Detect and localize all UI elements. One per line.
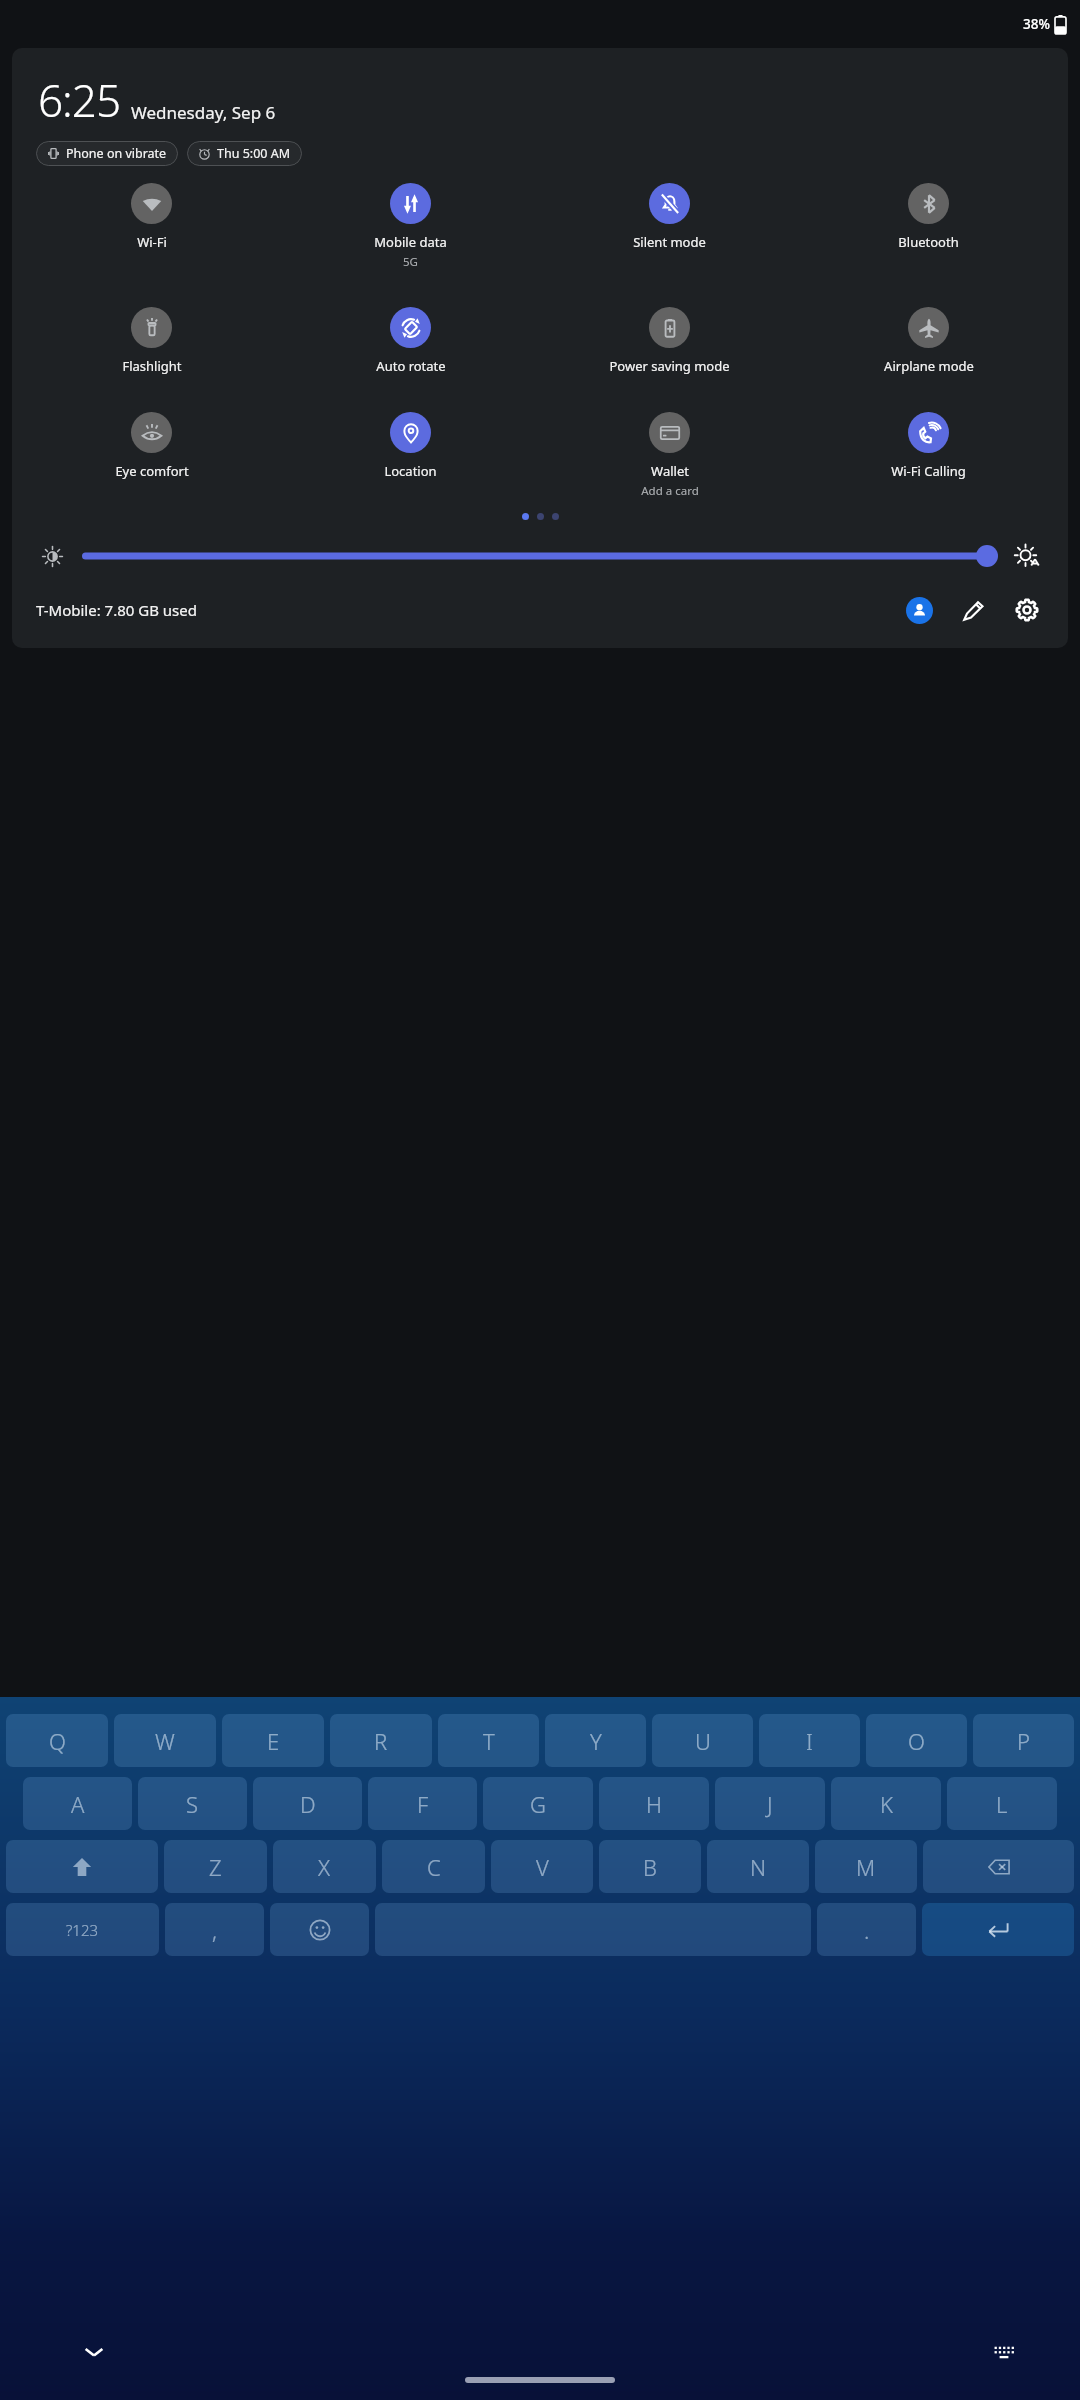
button[interactable]: X — [273, 1840, 376, 1893]
staticText: H — [646, 1789, 662, 1819]
staticText: 5G — [403, 254, 418, 270]
button[interactable]: V — [491, 1840, 593, 1893]
button[interactable]: Auto brightness — [1010, 539, 1044, 573]
staticText: P — [1017, 1726, 1030, 1756]
staticText: Z — [209, 1852, 222, 1882]
button[interactable]: B — [599, 1840, 701, 1893]
staticText: T — [483, 1726, 495, 1756]
button[interactable]: M — [815, 1840, 917, 1893]
button[interactable]: S — [138, 1777, 247, 1830]
button[interactable]: J — [715, 1777, 825, 1830]
button[interactable]: Wi-Fi — [22, 179, 281, 255]
button[interactable]: U — [652, 1714, 753, 1767]
button[interactable]: A — [23, 1777, 132, 1830]
staticText: Power saving mode — [609, 357, 730, 375]
button[interactable]: Power saving mode — [540, 303, 799, 379]
button[interactable]: Settings — [1008, 591, 1046, 629]
staticText: Wednesday, Sep 6 — [131, 101, 276, 124]
staticText: W — [155, 1726, 175, 1756]
staticText: Eye comfort — [115, 462, 189, 480]
staticText: Y — [590, 1726, 602, 1756]
button[interactable]: E — [222, 1714, 324, 1767]
button[interactable]: W — [114, 1714, 216, 1767]
button[interactable]: Brightness — [36, 540, 68, 572]
button[interactable]: Brightness slider — [82, 541, 998, 571]
button[interactable]: Bluetooth — [799, 179, 1058, 255]
button[interactable]: P — [973, 1714, 1074, 1767]
staticText: B — [643, 1852, 657, 1882]
staticText: V — [536, 1852, 549, 1882]
staticText: K — [880, 1789, 893, 1819]
staticText: Wi-Fi Calling — [891, 462, 966, 480]
button[interactable]: T — [438, 1714, 539, 1767]
button[interactable]: Q — [6, 1714, 108, 1767]
staticText: F — [417, 1789, 429, 1819]
button[interactable]: Switch keyboard — [984, 2332, 1024, 2372]
button[interactable]: Hide keyboard — [74, 2332, 114, 2372]
button[interactable]: . — [817, 1903, 916, 1956]
button[interactable]: Backspace — [923, 1840, 1074, 1893]
staticText: J — [767, 1789, 773, 1819]
button[interactable]: Thu 5:00 AM — [187, 141, 302, 166]
button[interactable]: K — [831, 1777, 941, 1830]
staticText: Wi-Fi — [137, 233, 167, 251]
staticText: Add a card — [641, 483, 699, 499]
staticText: Auto rotate — [376, 357, 446, 375]
staticText: G — [530, 1789, 546, 1819]
staticText: I — [806, 1726, 813, 1756]
button[interactable]: ?123 — [6, 1903, 159, 1956]
button[interactable]: R — [330, 1714, 432, 1767]
staticText: Bluetooth — [898, 233, 959, 251]
staticText: Airplane mode — [884, 357, 974, 375]
staticText: E — [267, 1726, 280, 1756]
button[interactable]: F — [368, 1777, 477, 1830]
staticText: R — [374, 1726, 388, 1756]
button[interactable]: I — [759, 1714, 860, 1767]
button[interactable]: Wi-Fi Calling — [799, 408, 1058, 484]
staticText: O — [908, 1726, 925, 1756]
staticText: , — [212, 1915, 217, 1945]
staticText: D — [300, 1789, 316, 1819]
button[interactable]: Emoji — [270, 1903, 369, 1956]
button[interactable]: Wallet — [540, 408, 799, 503]
button[interactable]: Y — [545, 1714, 646, 1767]
staticText: A — [71, 1789, 85, 1819]
button[interactable]: Silent mode — [540, 179, 799, 255]
button[interactable]: C — [382, 1840, 485, 1893]
staticText: C — [427, 1852, 441, 1882]
staticText: ?123 — [66, 1920, 99, 1940]
staticText: Flashlight — [122, 357, 182, 375]
button[interactable]: Z — [164, 1840, 267, 1893]
button[interactable]: , — [165, 1903, 264, 1956]
button[interactable]: Auto rotate — [281, 303, 540, 379]
button[interactable]: Shift — [6, 1840, 158, 1893]
staticText: Silent mode — [633, 233, 706, 251]
staticText: Thu 5:00 AM — [217, 145, 291, 162]
staticText: U — [695, 1726, 711, 1756]
button[interactable]: Enter — [922, 1903, 1074, 1956]
staticText: N — [750, 1852, 767, 1882]
button[interactable]: N — [707, 1840, 809, 1893]
button[interactable]: Mobile data — [281, 179, 540, 274]
button[interactable]: Airplane mode — [799, 303, 1058, 379]
staticText: . — [864, 1915, 870, 1945]
button[interactable]: Flashlight — [22, 303, 281, 379]
staticText: Phone on vibrate — [66, 145, 167, 162]
staticText: X — [318, 1852, 331, 1882]
button[interactable]: Location — [281, 408, 540, 484]
staticText: S — [186, 1789, 199, 1819]
button[interactable]: D — [253, 1777, 362, 1830]
button[interactable]: User profile — [900, 591, 938, 629]
button[interactable]: Edit tiles — [954, 591, 992, 629]
button[interactable]: Phone on vibrate — [36, 141, 178, 166]
button[interactable]: L — [947, 1777, 1057, 1830]
button[interactable]: H — [599, 1777, 709, 1830]
staticText: M — [856, 1852, 876, 1882]
button[interactable]: O — [866, 1714, 967, 1767]
staticText: Q — [49, 1726, 66, 1756]
staticText: 38% — [1023, 15, 1050, 33]
button[interactable]: Eye comfort — [22, 408, 281, 484]
button[interactable]: G — [483, 1777, 593, 1830]
staticText: T-Mobile: 7.80 GB used — [36, 600, 197, 620]
